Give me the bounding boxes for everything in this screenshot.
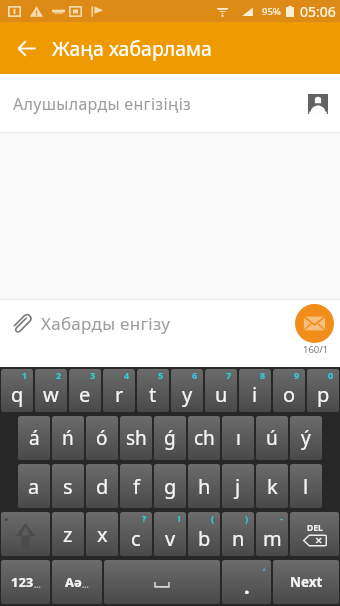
staticText: x bbox=[97, 521, 108, 548]
button[interactable]: t bbox=[137, 369, 169, 412]
staticText: DEL bbox=[307, 522, 323, 534]
staticText: j bbox=[235, 473, 241, 500]
button[interactable]: r bbox=[103, 369, 135, 412]
staticText: 05:06 bbox=[300, 2, 336, 21]
staticText: 1 bbox=[22, 369, 28, 381]
staticText: 3 bbox=[90, 369, 96, 381]
button[interactable]: j bbox=[222, 464, 254, 508]
staticText: p bbox=[317, 381, 330, 408]
staticText: 5 bbox=[158, 369, 164, 381]
staticText: q bbox=[11, 381, 24, 408]
button[interactable]: ý bbox=[290, 416, 322, 460]
staticText: ch bbox=[194, 425, 215, 451]
staticText: ... bbox=[34, 579, 41, 590]
button[interactable]: sh bbox=[120, 416, 152, 460]
staticText: ? bbox=[142, 512, 147, 524]
staticText: n bbox=[232, 525, 245, 552]
button[interactable]: e bbox=[69, 369, 101, 412]
button[interactable]: Next bbox=[273, 560, 339, 604]
staticText: ó bbox=[96, 425, 108, 451]
button[interactable]: w bbox=[35, 369, 67, 412]
staticText: 6 bbox=[192, 369, 198, 381]
button[interactable]: u bbox=[205, 369, 237, 412]
staticText: d bbox=[96, 473, 109, 500]
staticText: s bbox=[63, 473, 73, 500]
staticText: 0 bbox=[328, 369, 334, 381]
button[interactable]: o bbox=[273, 369, 305, 412]
staticText: sh bbox=[126, 425, 147, 451]
staticText: m bbox=[263, 525, 282, 552]
staticText: ) bbox=[245, 512, 249, 524]
button[interactable]: ú bbox=[256, 416, 288, 460]
staticText: b bbox=[198, 525, 211, 552]
staticText: h bbox=[198, 473, 211, 500]
staticText: ý bbox=[301, 425, 311, 451]
staticText: ! bbox=[178, 512, 181, 524]
staticText: y bbox=[182, 381, 193, 408]
staticText: c bbox=[131, 525, 141, 552]
button[interactable]: a bbox=[18, 464, 50, 508]
button[interactable]: Delete bbox=[290, 512, 339, 556]
button[interactable]: v bbox=[154, 512, 186, 556]
staticText: u bbox=[215, 381, 228, 408]
button[interactable]: b bbox=[188, 512, 220, 556]
staticText: 160/1 bbox=[303, 343, 329, 356]
staticText: . bbox=[244, 573, 250, 600]
button[interactable]: i bbox=[239, 369, 271, 412]
button[interactable]: ch bbox=[188, 416, 220, 460]
staticText: o bbox=[283, 381, 296, 408]
staticText: 8 bbox=[260, 369, 266, 381]
button[interactable]: f bbox=[120, 464, 152, 508]
staticText: 95% bbox=[262, 5, 281, 18]
button[interactable]: x bbox=[86, 512, 118, 556]
staticText: r bbox=[115, 381, 124, 408]
staticText: l bbox=[303, 473, 309, 500]
staticText: Жаңа хабарлама bbox=[52, 35, 212, 62]
button[interactable]: s bbox=[52, 464, 84, 508]
staticText: ú bbox=[266, 425, 278, 451]
button[interactable]: m bbox=[256, 512, 288, 556]
staticText: w bbox=[43, 381, 59, 408]
staticText: Next bbox=[290, 573, 323, 591]
staticText: 123 bbox=[11, 573, 34, 591]
button[interactable]: Add contact bbox=[301, 87, 335, 121]
button[interactable]: Send message bbox=[295, 304, 334, 343]
button[interactable]: ı bbox=[222, 416, 254, 460]
button[interactable]: 123 bbox=[1, 560, 50, 604]
button[interactable]: d bbox=[86, 464, 118, 508]
button[interactable]: c bbox=[120, 512, 152, 556]
staticText: z bbox=[63, 521, 73, 548]
button[interactable]: n bbox=[222, 512, 254, 556]
button[interactable]: y bbox=[171, 369, 203, 412]
button[interactable]: ó bbox=[86, 416, 118, 460]
button[interactable]: . bbox=[222, 560, 271, 604]
staticText: t bbox=[149, 381, 157, 408]
staticText: a bbox=[28, 473, 40, 500]
button[interactable]: Алушыларды енгізіңіз bbox=[0, 74, 340, 133]
button[interactable]: l bbox=[290, 464, 322, 508]
staticText: á bbox=[29, 425, 40, 451]
button[interactable]: q bbox=[1, 369, 33, 412]
staticText: ı bbox=[236, 425, 241, 451]
button[interactable]: z bbox=[52, 512, 84, 556]
staticText: f bbox=[133, 473, 140, 500]
staticText: Алушыларды енгізіңіз bbox=[13, 93, 192, 115]
staticText: ǵ bbox=[164, 425, 176, 451]
button[interactable]: Back bbox=[0, 22, 52, 74]
button[interactable]: Space bbox=[104, 560, 220, 604]
button[interactable]: Shift bbox=[1, 512, 50, 556]
button[interactable]: h bbox=[188, 464, 220, 508]
button[interactable]: Aә bbox=[52, 560, 102, 604]
button[interactable]: ǵ bbox=[154, 416, 186, 460]
staticText: i bbox=[252, 381, 258, 408]
button[interactable]: g bbox=[154, 464, 186, 508]
staticText: ( bbox=[211, 512, 215, 524]
button[interactable]: Attach bbox=[6, 307, 38, 339]
button[interactable]: p bbox=[307, 369, 339, 412]
staticText: Хабарды енгізу bbox=[41, 312, 171, 335]
button[interactable]: ń bbox=[52, 416, 84, 460]
staticText: , bbox=[263, 560, 266, 572]
button[interactable]: k bbox=[256, 464, 288, 508]
staticText: - bbox=[280, 512, 283, 524]
button[interactable]: á bbox=[18, 416, 50, 460]
